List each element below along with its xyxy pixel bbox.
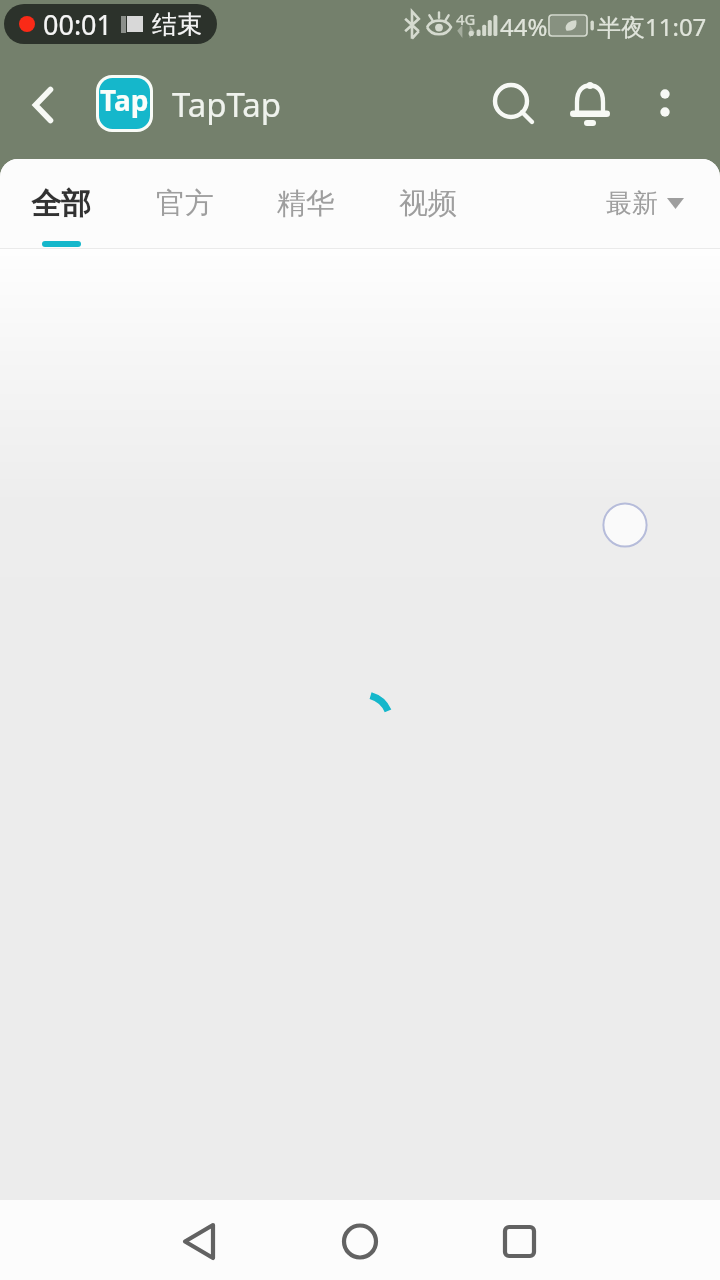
button[interactable]: 精华 bbox=[277, 159, 337, 249]
staticText: 视频 bbox=[399, 185, 457, 222]
staticText: 官方 bbox=[156, 185, 214, 222]
staticText: 4G bbox=[456, 9, 476, 29]
staticText: 半夜11:07 bbox=[597, 10, 707, 43]
button[interactable]: Search bbox=[484, 76, 540, 132]
button[interactable]: 最新 bbox=[606, 187, 684, 220]
button[interactable]: Back bbox=[16, 80, 68, 132]
staticText: TapTap bbox=[172, 82, 282, 127]
staticText: 00:01 bbox=[43, 6, 113, 43]
button[interactable]: More options bbox=[638, 76, 692, 130]
button[interactable]: TapTap app icon bbox=[99, 78, 150, 129]
button[interactable]: 00:01 bbox=[4, 4, 217, 44]
staticText: 精华 bbox=[277, 185, 335, 222]
button[interactable]: Recents bbox=[484, 1202, 556, 1274]
button[interactable]: Notifications bbox=[562, 74, 618, 130]
staticText: 44% bbox=[500, 10, 548, 43]
button[interactable]: 全部 bbox=[31, 159, 91, 249]
staticText: 结束 bbox=[152, 9, 202, 40]
button[interactable]: Back bbox=[163, 1202, 235, 1274]
button[interactable]: 视频 bbox=[399, 159, 459, 249]
button[interactable]: 官方 bbox=[156, 159, 216, 249]
staticText: 全部 bbox=[31, 185, 91, 223]
staticText: Tap bbox=[100, 81, 149, 119]
staticText: 最新 bbox=[606, 187, 658, 220]
button[interactable]: Home bbox=[324, 1202, 396, 1274]
